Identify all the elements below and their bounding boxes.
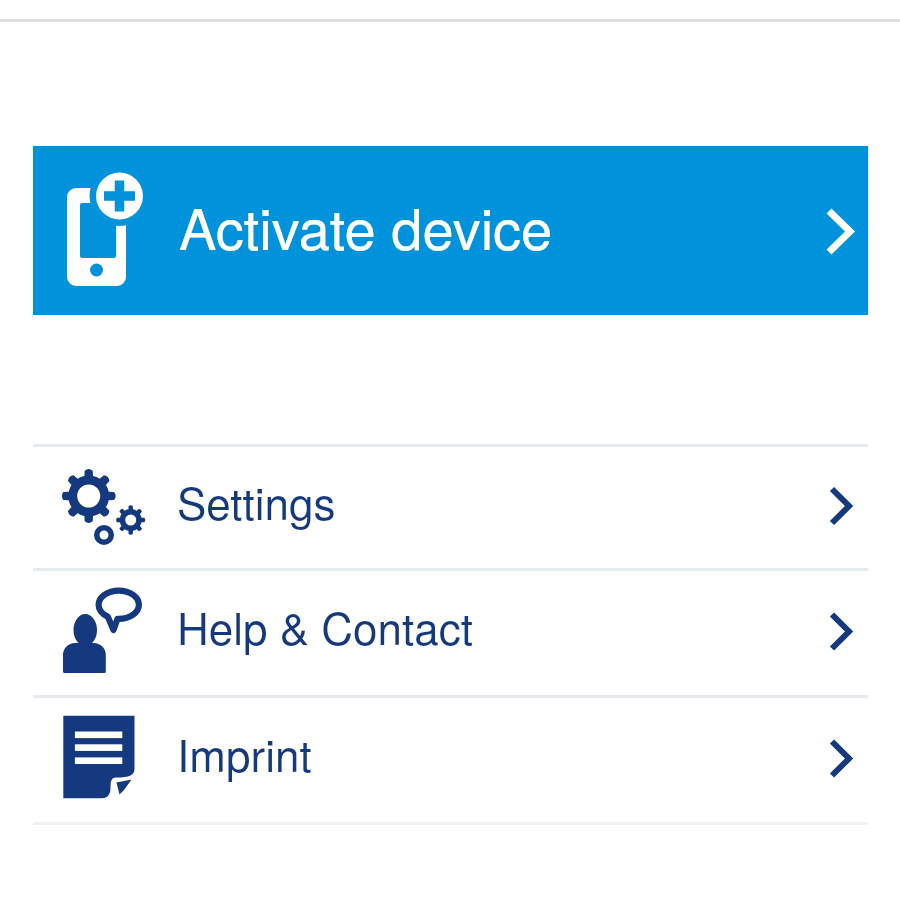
staticText: Imprint [177,721,312,784]
button[interactable]: Activate device [33,146,868,315]
staticText: Settings [177,469,336,532]
button[interactable]: Settings [0,447,900,565]
staticText: Activate device [179,186,553,266]
button[interactable]: Imprint [0,698,900,819]
button[interactable]: Help and Contact [0,571,900,692]
staticText: Help & Contact [177,594,473,657]
